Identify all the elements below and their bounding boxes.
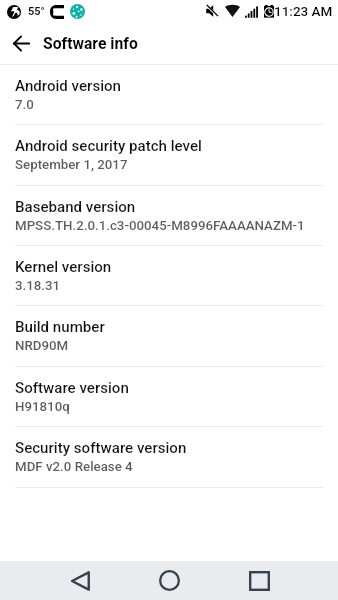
- staticText: MPSS.TH.2.0.1.c3-00045-M8996FAAAANAZM-1: [15, 218, 305, 234]
- staticText: 55°: [28, 5, 45, 18]
- staticText: H91810q: [15, 399, 70, 415]
- staticText: 11:23 AM: [274, 3, 333, 19]
- staticText: Baseband version: [15, 198, 136, 216]
- staticText: Build number: [15, 318, 105, 336]
- button[interactable]: Navigate up: [0, 22, 42, 64]
- staticText: Software info: [43, 34, 138, 52]
- staticText: Android security patch level: [15, 137, 202, 155]
- button[interactable]: Security software version: [0, 427, 338, 487]
- staticText: 3.18.31: [15, 278, 61, 294]
- button[interactable]: Recent apps: [224, 561, 294, 600]
- button[interactable]: Kernel version: [0, 246, 338, 305]
- staticText: MDF v2.0 Release 4: [15, 459, 133, 475]
- button[interactable]: Home: [134, 561, 204, 600]
- staticText: Software version: [15, 379, 129, 397]
- button[interactable]: Android version: [0, 65, 338, 124]
- button[interactable]: Back: [45, 561, 115, 600]
- button[interactable]: Baseband version: [0, 186, 338, 245]
- staticText: September 1, 2017: [15, 157, 128, 173]
- button[interactable]: Software version: [0, 367, 338, 426]
- staticText: Android version: [15, 77, 121, 95]
- staticText: NRD90M: [15, 338, 69, 354]
- staticText: Security software version: [15, 439, 187, 457]
- button[interactable]: Build number: [0, 306, 338, 366]
- button[interactable]: Android security patch level: [0, 125, 338, 185]
- staticText: Kernel version: [15, 258, 112, 276]
- staticText: 7.0: [15, 97, 34, 113]
